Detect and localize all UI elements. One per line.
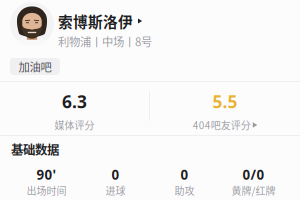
staticText: 0 bbox=[111, 166, 119, 183]
staticText: 出场时间 bbox=[26, 183, 66, 198]
staticText: 基础数据 bbox=[11, 140, 59, 158]
staticText: 助攻 bbox=[174, 183, 194, 198]
button[interactable]: 加油吧 bbox=[10, 58, 60, 75]
staticText: 90' bbox=[36, 166, 56, 183]
button[interactable]: 6.3 bbox=[0, 92, 149, 132]
staticText: 0/0 bbox=[242, 166, 264, 183]
staticText: 利物浦丨中场丨8号 bbox=[58, 33, 152, 49]
staticText: 0 bbox=[180, 166, 188, 183]
staticText: 5.5 bbox=[212, 90, 237, 113]
staticText: 媒体评分 bbox=[54, 118, 94, 132]
staticText: 黄牌/红牌 bbox=[231, 183, 275, 198]
button[interactable]: 索博斯洛伊 球员头像 bbox=[10, 2, 54, 46]
button[interactable]: 5.5 bbox=[150, 92, 300, 132]
staticText: 加油吧 bbox=[18, 58, 51, 75]
staticText: 6.3 bbox=[62, 90, 87, 113]
staticText: 进球 bbox=[105, 183, 125, 198]
staticText: 404吧友评分 bbox=[193, 118, 251, 132]
staticText: 索博斯洛伊 bbox=[58, 10, 133, 32]
button[interactable]: 索博斯洛伊 bbox=[58, 12, 142, 30]
